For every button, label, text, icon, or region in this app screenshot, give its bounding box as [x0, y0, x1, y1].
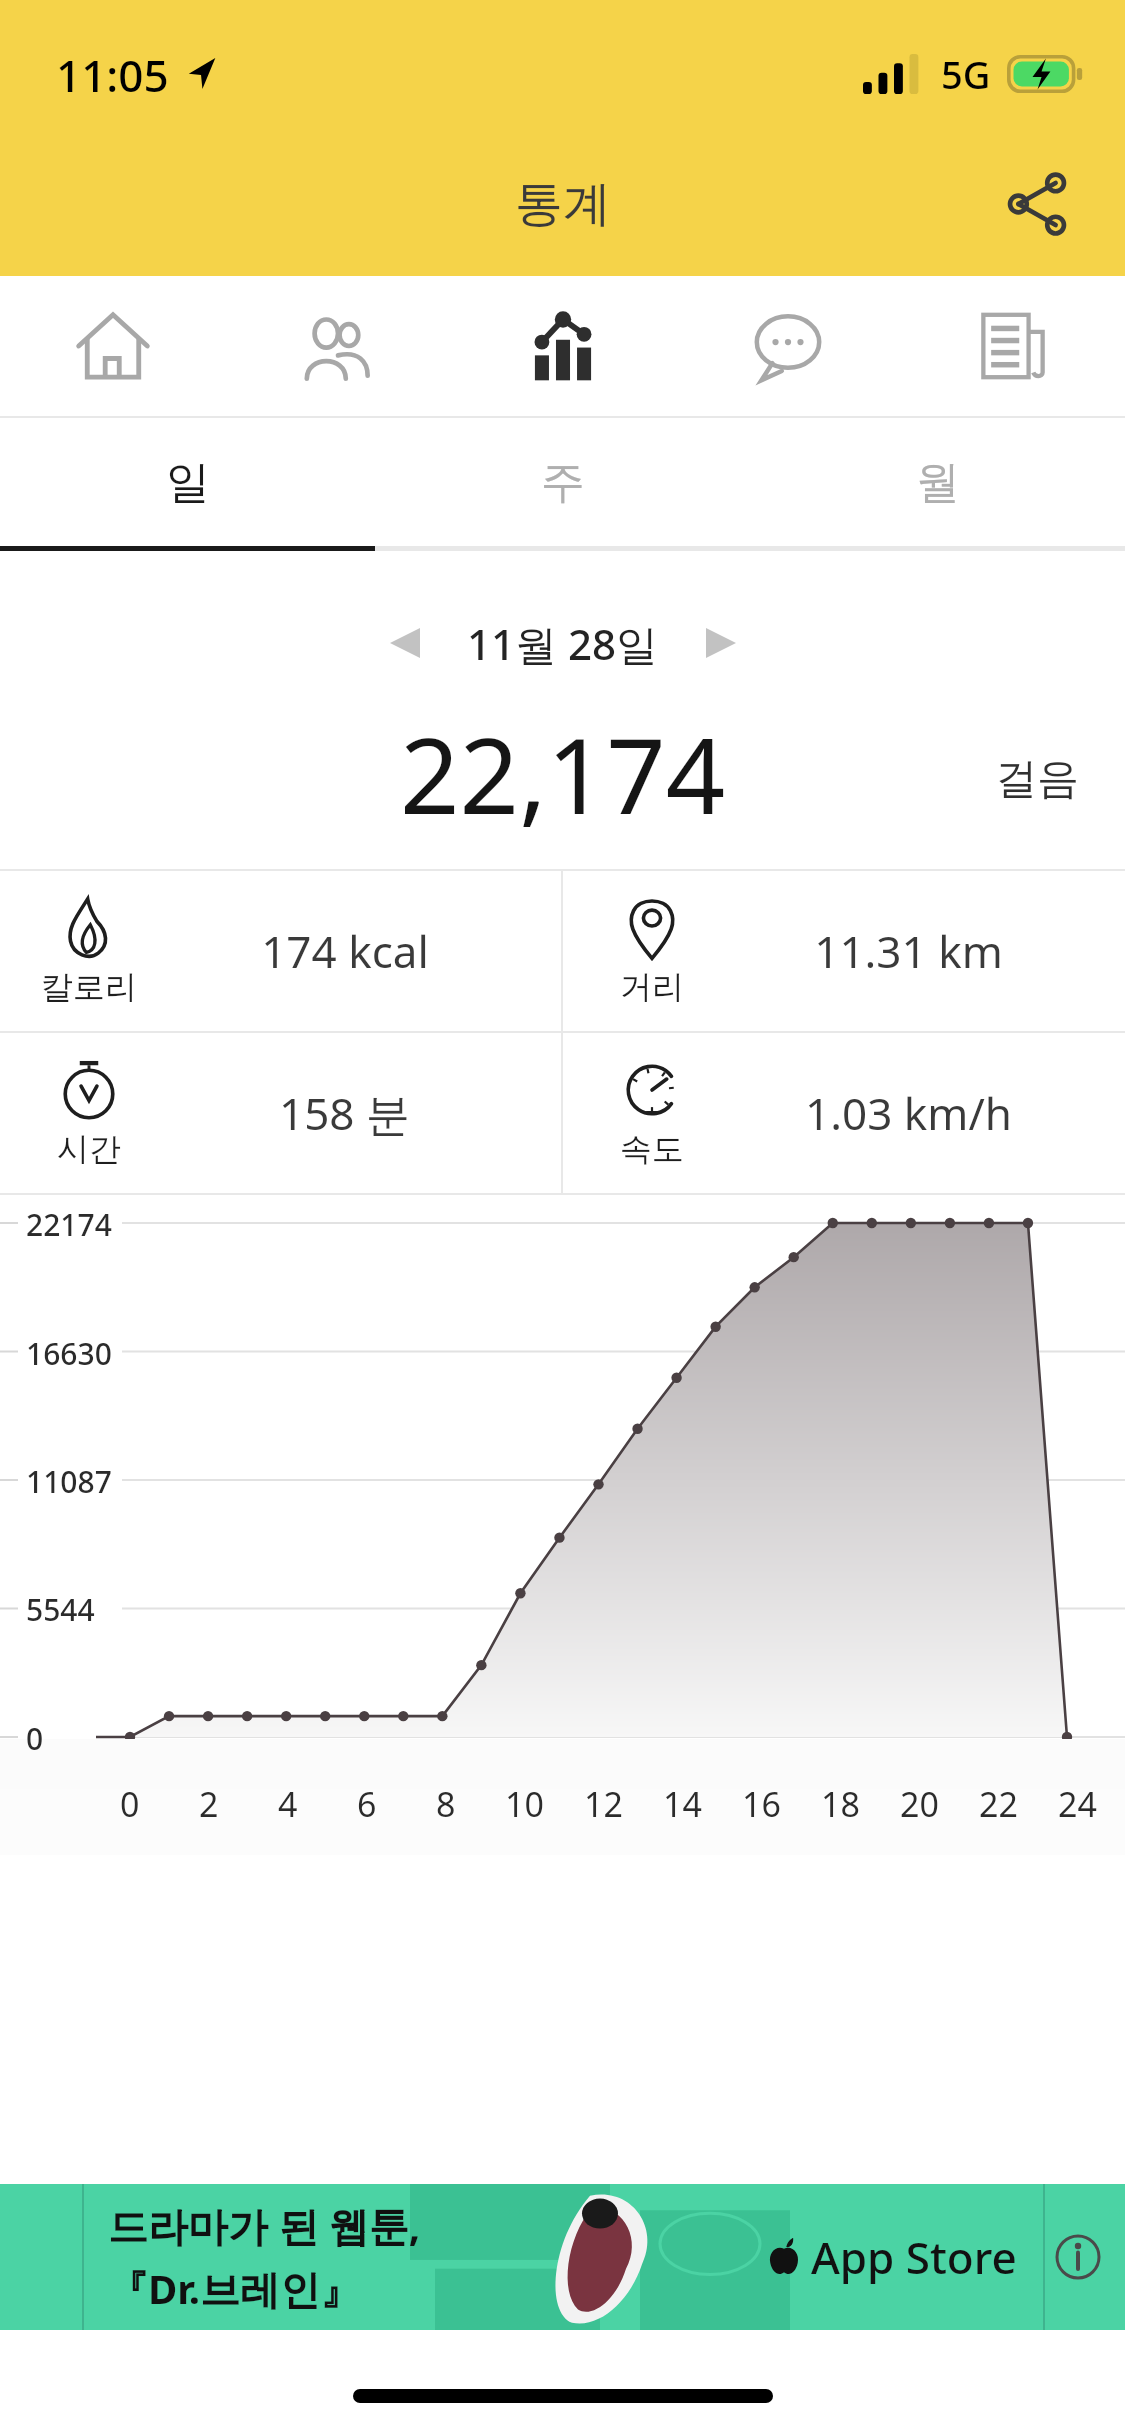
staticText: 통계: [515, 174, 611, 234]
staticText: 158 분: [279, 1083, 410, 1143]
staticText: 거리: [620, 967, 684, 1007]
staticText: 시간: [57, 1129, 121, 1169]
staticText: 1.03 km/h: [805, 1083, 1012, 1143]
staticText: 11.31 km: [814, 921, 1003, 981]
staticText: 주: [541, 455, 585, 510]
button[interactable]: Statistics: [450, 276, 675, 416]
button[interactable]: 시간: [0, 1033, 561, 1193]
staticText: 18: [821, 1781, 860, 1827]
button[interactable]: Next day: [685, 607, 757, 679]
staticText: 22174: [26, 1204, 112, 1245]
button[interactable]: 칼로리: [0, 871, 561, 1031]
button[interactable]: Home: [0, 276, 225, 416]
button[interactable]: Chat: [675, 276, 900, 416]
staticText: 11087: [26, 1461, 112, 1502]
staticText: 10: [505, 1781, 544, 1827]
staticText: 20: [900, 1781, 939, 1827]
staticText: 월: [916, 455, 960, 510]
staticText: 5544: [26, 1589, 95, 1630]
staticText: 6: [357, 1781, 377, 1827]
button[interactable]: 월: [750, 418, 1125, 546]
button[interactable]: 주: [375, 418, 750, 546]
staticText: 24: [1058, 1781, 1097, 1827]
staticText: 8: [436, 1781, 456, 1827]
button[interactable]: Ad info: [1049, 2228, 1107, 2286]
staticText: 5G: [941, 48, 991, 100]
button[interactable]: 속도: [563, 1033, 1125, 1193]
button[interactable]: Friends: [225, 276, 450, 416]
staticText: 11:05: [56, 45, 169, 105]
staticText: 11월 28일: [467, 615, 659, 672]
staticText: 속도: [620, 1129, 684, 1169]
button[interactable]: News: [900, 276, 1125, 416]
staticText: 『Dr.브레인』: [108, 2261, 360, 2316]
staticText: App Store: [811, 2227, 1017, 2287]
staticText: 0: [26, 1718, 44, 1759]
button[interactable]: Share: [989, 156, 1085, 252]
staticText: 드라마가 된 웹툰,: [108, 2198, 421, 2253]
staticText: 174 kcal: [261, 921, 429, 981]
staticText: 2: [199, 1781, 219, 1827]
staticText: 16: [742, 1781, 781, 1827]
staticText: 4: [278, 1781, 298, 1827]
button[interactable]: 일: [0, 418, 375, 546]
staticText: 22: [979, 1781, 1018, 1827]
staticText: 14: [663, 1781, 702, 1827]
button[interactable]: 드라마가 된 웹툰,: [0, 2184, 1125, 2330]
staticText: 22,174: [400, 703, 726, 833]
staticText: 걸음: [995, 753, 1079, 806]
staticText: 16630: [26, 1333, 112, 1374]
button[interactable]: 거리: [563, 871, 1125, 1031]
staticText: 0: [120, 1781, 140, 1827]
staticText: 일: [166, 455, 210, 510]
staticText: 12: [584, 1781, 623, 1827]
staticText: 칼로리: [41, 967, 137, 1007]
button[interactable]: Previous day: [369, 607, 441, 679]
